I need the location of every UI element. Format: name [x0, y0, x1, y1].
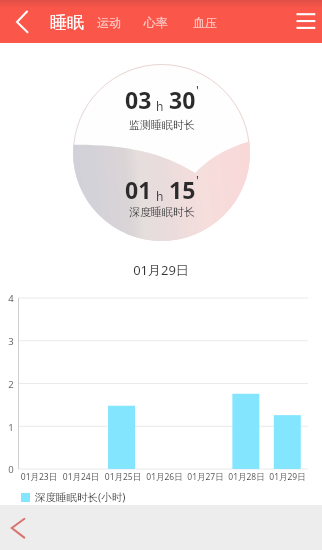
staticText: 01月24日: [60, 471, 102, 483]
staticText: 01月23日: [18, 471, 60, 483]
staticText: 03: [125, 84, 152, 115]
staticText: 01月25日: [102, 471, 144, 483]
staticText: 01月28日: [226, 471, 267, 483]
staticText: 01: [125, 174, 152, 205]
staticText: 01月26日: [144, 471, 185, 483]
staticText: 30: [169, 84, 196, 115]
button[interactable]: Back: [5, 5, 38, 38]
button[interactable]: 血压: [191, 13, 219, 32]
staticText: h: [156, 188, 164, 204]
button[interactable]: 心率: [142, 13, 170, 32]
staticText: 2: [3, 378, 19, 391]
staticText: ': [196, 171, 199, 189]
staticText: 0: [3, 463, 19, 476]
staticText: 1: [3, 421, 19, 434]
staticText: 深度睡眠时长: [129, 205, 195, 219]
button[interactable]: 运动: [95, 13, 123, 32]
button[interactable]: 睡眠: [50, 12, 84, 33]
staticText: 01月29日: [267, 471, 308, 483]
staticText: 监测睡眠时长: [129, 118, 195, 132]
staticText: 01月27日: [185, 471, 226, 483]
button[interactable]: Back: [2, 509, 34, 541]
staticText: 15: [169, 174, 196, 205]
staticText: 深度睡眠时长(小时): [35, 490, 126, 504]
staticText: 01月29日: [0, 261, 322, 279]
staticText: 睡眠: [50, 12, 84, 33]
staticText: 3: [3, 335, 19, 348]
staticText: ': [196, 81, 199, 99]
staticText: 4: [3, 292, 19, 305]
staticText: h: [156, 98, 164, 114]
button[interactable]: Menu: [288, 5, 322, 39]
